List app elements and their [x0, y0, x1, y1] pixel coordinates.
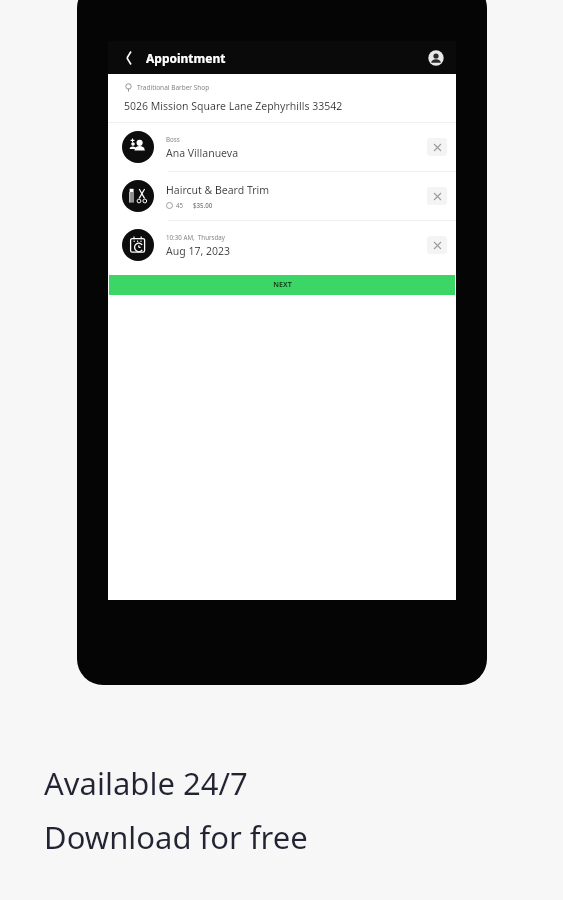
button[interactable]: NEXT: [109, 275, 455, 295]
button[interactable]: Remove: [427, 138, 447, 156]
staticText: 5026 Mission Square Lane Zephyrhills 335…: [124, 99, 343, 113]
staticText: Haircut & Beard Trim: [166, 183, 270, 197]
staticText: Boss: [166, 135, 180, 143]
staticText: Download for free: [44, 816, 308, 858]
button[interactable]: Remove: [427, 187, 447, 205]
button[interactable]: Remove: [427, 236, 447, 254]
staticText: 45: [176, 201, 184, 209]
staticText: Ana Villanueva: [166, 146, 239, 160]
button[interactable]: 10:30 AM, Thursday: [108, 221, 456, 269]
staticText: Available 24/7: [44, 762, 248, 804]
staticText: NEXT: [273, 280, 292, 290]
button[interactable]: Haircut & Beard Trim: [108, 172, 456, 220]
staticText: Appointment: [146, 50, 226, 66]
staticText: 10:30 AM, Thursday: [166, 233, 225, 241]
staticText: $35.00: [193, 201, 213, 209]
button[interactable]: Back: [116, 45, 142, 71]
button[interactable]: Boss: [108, 123, 456, 171]
staticText: Aug 17, 2023: [166, 244, 230, 258]
button[interactable]: Account: [426, 48, 446, 68]
staticText: Traditional Barber Shop: [137, 83, 210, 92]
